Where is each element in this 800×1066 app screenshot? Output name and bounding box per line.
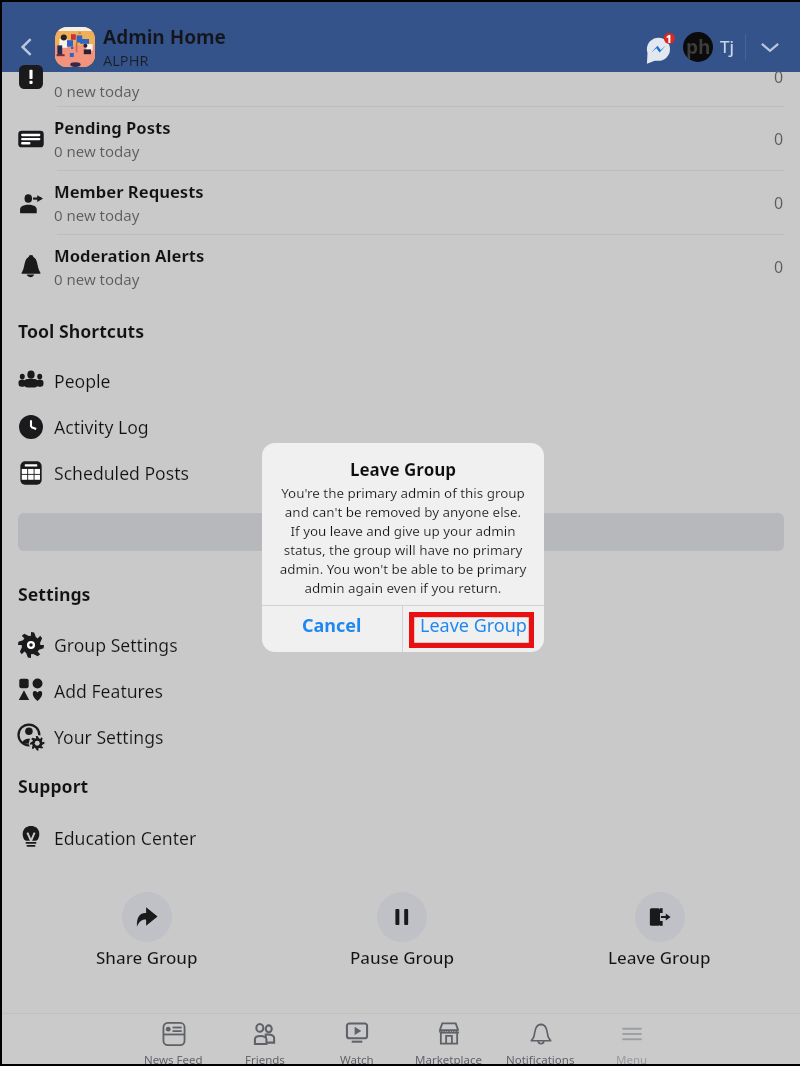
button[interactable]: Leave Group <box>403 606 544 652</box>
button[interactable]: Messenger <box>645 31 677 63</box>
staticText: People <box>54 369 111 393</box>
button[interactable]: Add Features <box>2 668 800 714</box>
staticText: Share Group <box>96 946 198 969</box>
button[interactable]: Group Settings <box>2 622 800 668</box>
staticText: Scheduled Posts <box>54 461 189 485</box>
button[interactable]: Leave Group <box>584 892 734 986</box>
staticText: Add Features <box>54 679 163 703</box>
staticText: Admin Home <box>103 24 226 50</box>
staticText: 0 <box>774 192 784 214</box>
staticText: Leave Group <box>262 458 544 481</box>
staticText: Group Settings <box>54 633 178 657</box>
staticText: 0 new today <box>54 141 140 161</box>
staticText: Pause Group <box>350 946 454 969</box>
staticText: Settings <box>18 582 91 606</box>
button[interactable]: People <box>2 358 800 404</box>
button[interactable]: News Feed <box>129 1013 217 1064</box>
button[interactable]: Your Settings <box>2 714 800 760</box>
button[interactable]: Pending Posts <box>2 107 800 171</box>
button[interactable]: Cancel <box>262 606 402 652</box>
button[interactable]: Activity Log <box>2 404 800 450</box>
staticText: 0 <box>774 256 784 278</box>
staticText: Your Settings <box>54 725 164 749</box>
staticText: Watch <box>340 1052 374 1064</box>
staticText: Tool Shortcuts <box>18 319 145 343</box>
staticText: News Feed <box>144 1052 203 1064</box>
staticText: Leave Group <box>420 613 527 638</box>
button[interactable]: Friends <box>221 1013 309 1064</box>
button[interactable]: Group photo <box>55 27 95 67</box>
button[interactable]: Member Requests <box>2 171 800 235</box>
button[interactable]: Education Center <box>2 815 800 861</box>
staticText: 0 new today <box>54 205 140 225</box>
staticText: Cancel <box>302 613 362 638</box>
button[interactable]: Moderation Alerts <box>2 235 800 298</box>
button[interactable]: Pause Group <box>327 892 477 986</box>
staticText: 0 new today <box>54 269 140 289</box>
staticText: 0 new today <box>54 81 140 101</box>
staticText: Pending Posts <box>54 116 171 139</box>
button[interactable]: Notifications <box>496 1013 584 1064</box>
staticText: ALPHR <box>103 50 149 70</box>
staticText: 1 <box>666 32 672 46</box>
button[interactable]: Menu <box>588 1013 676 1064</box>
staticText: Member Requests <box>54 180 204 203</box>
staticText: Marketplace <box>415 1052 482 1064</box>
button[interactable]: Marketplace <box>404 1013 492 1064</box>
button[interactable]: Watch <box>313 1013 401 1064</box>
staticText: Notifications <box>506 1052 575 1064</box>
staticText: 0 <box>774 128 784 150</box>
staticText: Tj <box>720 35 734 58</box>
staticText: Moderation Alerts <box>54 244 205 267</box>
staticText: 0 <box>774 66 784 88</box>
button[interactable]: Scheduled Posts <box>2 450 800 496</box>
staticText: You're the primary admin of this group a… <box>262 484 544 597</box>
button[interactable]: Profile <box>683 32 713 62</box>
staticText: Education Center <box>54 826 197 850</box>
staticText: ph <box>686 34 711 60</box>
staticText: Leave Group <box>608 946 711 969</box>
staticText: Activity Log <box>54 415 149 439</box>
staticText: Friends <box>245 1052 285 1064</box>
button[interactable]: Share Group <box>72 892 222 986</box>
button[interactable]: Back <box>5 25 49 69</box>
staticText: Support <box>18 774 89 798</box>
button[interactable]: Expand menu <box>754 31 786 63</box>
staticText: Menu <box>616 1052 648 1064</box>
